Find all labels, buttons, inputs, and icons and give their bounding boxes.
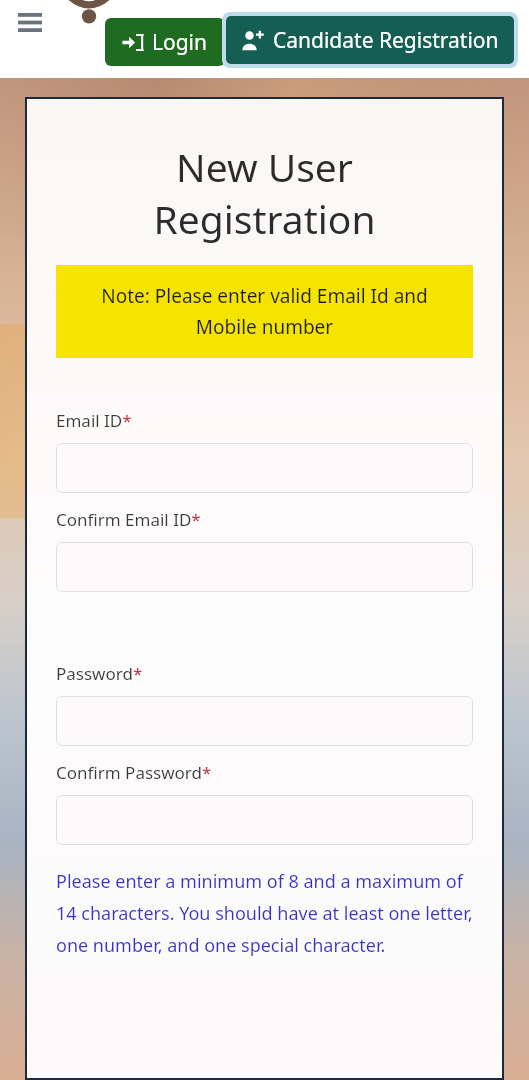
staticText: Candidate Registration xyxy=(273,26,499,55)
staticText: Confirm Password* xyxy=(56,761,212,784)
button[interactable] xyxy=(56,696,473,746)
button[interactable]: Candidate Registration xyxy=(226,16,514,64)
staticText: Login xyxy=(152,28,208,57)
staticText: Please enter a minimum of 8 and a maximu… xyxy=(56,869,473,957)
staticText: New User Registration xyxy=(56,140,473,245)
button[interactable]: Login xyxy=(105,18,225,66)
staticText: Password* xyxy=(56,662,143,685)
button[interactable] xyxy=(56,542,473,592)
button[interactable]: Menu xyxy=(8,0,52,44)
staticText: Confirm Email ID* xyxy=(56,508,201,531)
staticText: Email ID* xyxy=(56,409,132,432)
staticText: Note: Please enter valid Email Id and Mo… xyxy=(70,283,459,340)
button[interactable] xyxy=(56,443,473,493)
button[interactable] xyxy=(56,795,473,845)
